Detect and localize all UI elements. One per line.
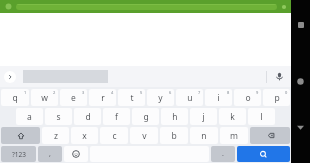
button[interactable]: b — [160, 127, 188, 144]
button[interactable]: u — [176, 89, 203, 106]
button[interactable]: h — [161, 108, 188, 125]
button[interactable]: x — [71, 127, 98, 144]
staticText: p — [274, 92, 280, 104]
button[interactable]: i — [205, 89, 232, 106]
staticText: s — [56, 111, 61, 123]
staticText: a — [27, 111, 32, 123]
button[interactable]: s — [45, 108, 72, 125]
button[interactable]: q — [1, 89, 29, 106]
button[interactable] — [16, 4, 277, 10]
button[interactable]: Back — [291, 118, 310, 137]
staticText: i — [217, 92, 220, 104]
staticText: z — [54, 130, 58, 142]
button[interactable]: w — [31, 89, 58, 106]
button[interactable]: Recent apps — [291, 15, 310, 34]
button[interactable]: l — [248, 108, 275, 125]
button[interactable]: y — [147, 89, 174, 106]
staticText: t — [130, 92, 134, 104]
button[interactable]: Symbols — [1, 146, 36, 162]
staticText: q — [12, 92, 18, 104]
staticText: u — [187, 92, 193, 104]
staticText: 3 — [82, 90, 85, 95]
button[interactable]: Home — [291, 72, 310, 91]
button[interactable]: t — [118, 89, 145, 106]
button[interactable]: k — [219, 108, 246, 125]
staticText: y — [158, 92, 163, 104]
staticText: h — [172, 111, 178, 123]
button[interactable]: Voice search — [277, 0, 291, 13]
button[interactable]: j — [190, 108, 217, 125]
staticText: c — [112, 130, 117, 142]
staticText: m — [230, 130, 238, 142]
button[interactable] — [64, 146, 88, 162]
staticText: 8 — [227, 90, 230, 95]
staticText: , — [49, 149, 51, 159]
button[interactable]: c — [100, 127, 128, 144]
button[interactable]: Shift — [1, 127, 40, 144]
staticText: 7 — [198, 90, 201, 95]
button[interactable]: r — [89, 89, 116, 106]
button[interactable]: p — [263, 89, 290, 106]
staticText: g — [143, 111, 149, 123]
button[interactable]: Voice input — [267, 66, 291, 87]
button[interactable]: Search — [237, 146, 290, 162]
staticText: 0 — [285, 90, 288, 95]
button[interactable]: m — [220, 127, 248, 144]
button[interactable]: v — [130, 127, 158, 144]
staticText: 1 — [24, 90, 27, 95]
staticText: 2 — [53, 90, 56, 95]
staticText: b — [171, 130, 177, 142]
staticText: v — [142, 130, 147, 142]
button[interactable]: Backspace — [250, 127, 290, 144]
staticText: w — [41, 92, 48, 104]
staticText: ?123 — [12, 150, 26, 159]
button[interactable]: o — [234, 89, 261, 106]
button[interactable]: Expand suggestions — [4, 71, 16, 83]
staticText: 5 — [140, 90, 143, 95]
button[interactable]: a — [16, 108, 43, 125]
staticText: o — [245, 92, 251, 104]
button[interactable]: z — [42, 127, 69, 144]
button[interactable]: d — [74, 108, 101, 125]
staticText: f — [115, 111, 118, 123]
button[interactable]: n — [190, 127, 218, 144]
staticText: 6 — [169, 90, 172, 95]
staticText: 9 — [256, 90, 259, 95]
staticText: e — [71, 92, 76, 104]
staticText: n — [201, 130, 207, 142]
button[interactable]: Period — [211, 146, 235, 162]
staticText: . — [222, 149, 224, 159]
staticText: d — [85, 111, 91, 123]
staticText: x — [82, 130, 87, 142]
staticText: k — [230, 111, 235, 123]
staticText: l — [260, 111, 263, 123]
button[interactable]: e — [60, 89, 87, 106]
button[interactable]: Navigate up — [0, 0, 16, 13]
button[interactable]: Comma — [38, 146, 62, 162]
staticText: 4 — [111, 90, 114, 95]
button[interactable]: f — [103, 108, 130, 125]
staticText: r — [101, 92, 105, 104]
button[interactable]: g — [132, 108, 159, 125]
staticText: j — [202, 111, 205, 123]
